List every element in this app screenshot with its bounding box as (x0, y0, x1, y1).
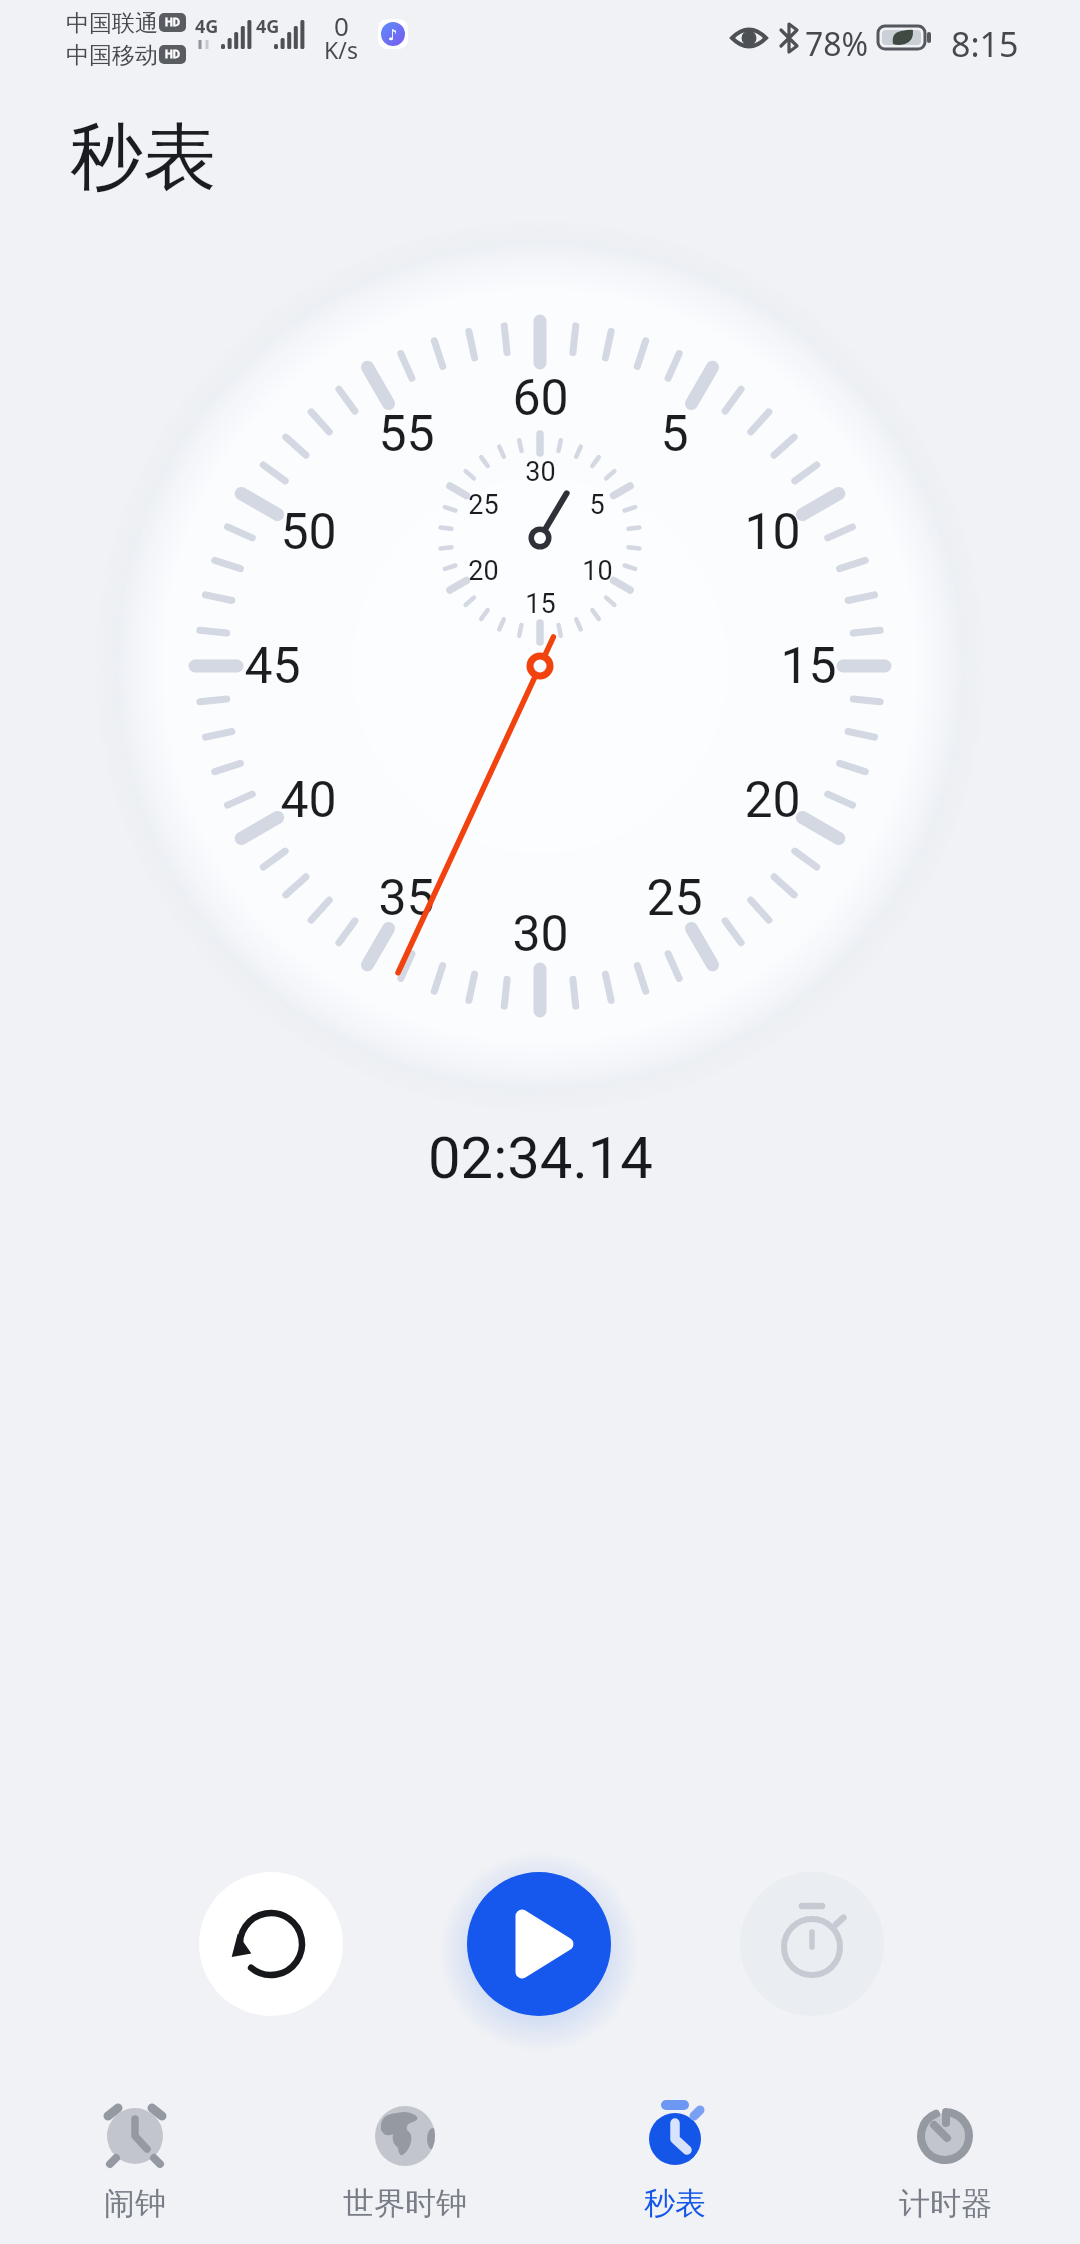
staticText: 世界时钟 (343, 2184, 467, 2223)
staticText: 秒表 (70, 112, 216, 204)
staticText: 4G (195, 14, 219, 39)
staticText: 25 (646, 869, 703, 928)
staticText: 10 (582, 555, 613, 587)
button[interactable]: 秒表 (540, 2080, 810, 2244)
staticText: 5 (660, 405, 689, 464)
staticText: 10 (744, 503, 801, 562)
staticText: 4G (256, 14, 280, 39)
staticText: 25 (468, 489, 499, 521)
staticText: HD (165, 48, 181, 61)
staticText: 闹钟 (104, 2184, 166, 2223)
staticText: HD (165, 16, 181, 29)
staticText: 0 (334, 8, 349, 43)
staticText: 中国移动 (66, 41, 158, 70)
staticText: 8:15 (951, 21, 1019, 67)
staticText: 02:34.14 (428, 1124, 653, 1192)
staticText: 20 (468, 555, 499, 587)
staticText: 60 (512, 369, 569, 428)
staticText: ♪ (388, 26, 398, 43)
staticText: 30 (525, 456, 556, 488)
staticText: 30 (512, 905, 569, 964)
staticText: 计时器 (899, 2184, 992, 2223)
staticText: 35 (378, 869, 435, 928)
staticText: 78% (805, 22, 869, 66)
staticText: 秒表 (644, 2184, 706, 2223)
button[interactable] (199, 1872, 343, 2016)
button[interactable]: 闹钟 (0, 2080, 270, 2244)
staticText: 20 (744, 771, 801, 830)
button[interactable] (467, 1872, 611, 2016)
button[interactable]: 计时器 (810, 2080, 1080, 2244)
staticText: 中国联通 (66, 9, 158, 38)
staticText: K/s (324, 34, 358, 65)
staticText: 15 (525, 588, 556, 620)
staticText: 45 (244, 637, 301, 696)
staticText: 50 (280, 503, 337, 562)
staticText: 15 (780, 637, 837, 696)
button[interactable] (740, 1872, 884, 2016)
staticText: 55 (378, 405, 435, 464)
staticText: 5 (589, 489, 605, 521)
button[interactable]: 世界时钟 (270, 2080, 540, 2244)
staticText: 40 (280, 771, 337, 830)
